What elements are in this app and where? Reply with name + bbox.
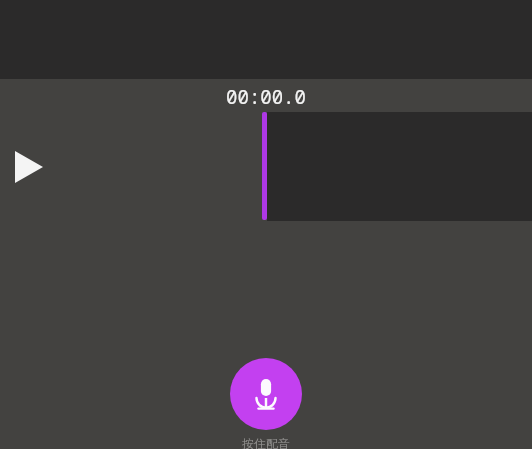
staticText: 按住配音 (242, 436, 290, 449)
button[interactable]: Hold to record voice-over (230, 358, 302, 430)
staticText: 00:00.0 (226, 84, 306, 110)
button[interactable]: Play (6, 144, 52, 190)
